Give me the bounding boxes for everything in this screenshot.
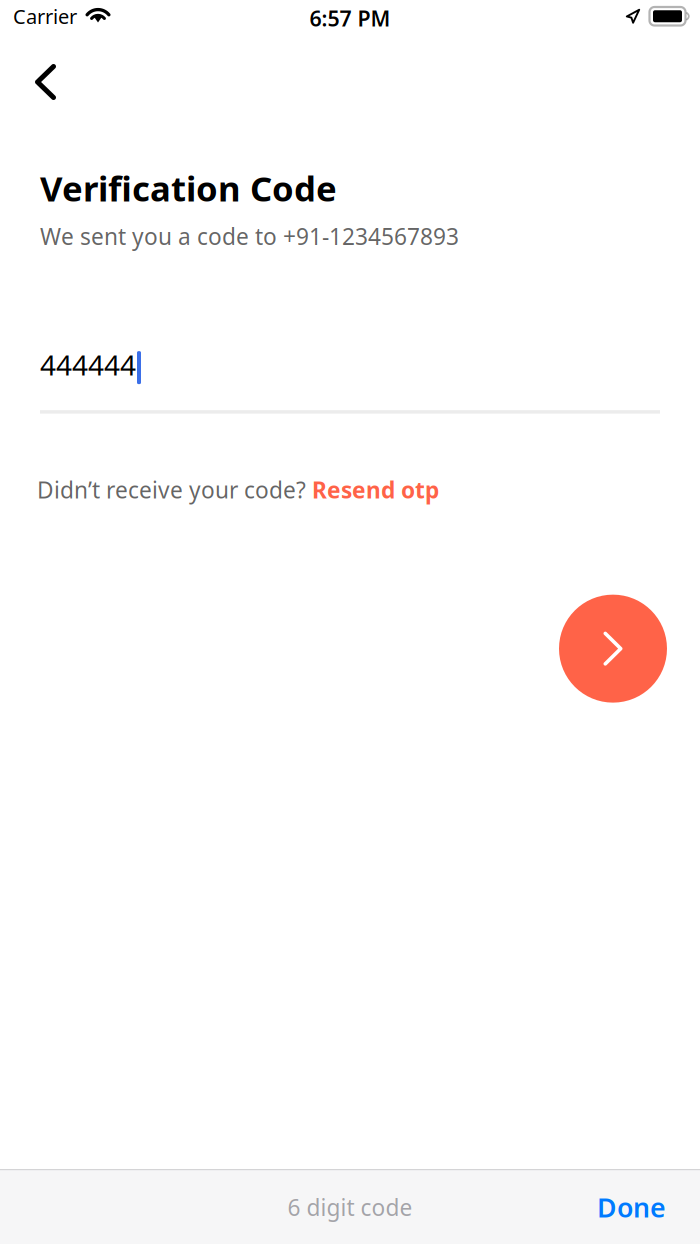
button[interactable]: Done [585, 1181, 678, 1233]
staticText: Verification Code [40, 165, 337, 211]
button[interactable]: 6 digit code [0, 346, 660, 414]
staticText: Done [597, 1189, 666, 1225]
staticText: 6:57 PM [309, 4, 390, 32]
staticText: Resend otp [312, 475, 439, 505]
button[interactable]: Resend otp [312, 468, 439, 512]
staticText: Didn’t receive your code? [37, 475, 306, 505]
button[interactable]: Continue [559, 595, 667, 703]
staticText: We sent you a code to +91-1234567893 [40, 221, 459, 251]
staticText: 444444 [40, 346, 136, 383]
button[interactable]: Back [0, 44, 86, 114]
staticText: Carrier [13, 3, 77, 30]
staticText: 6 digit code [287, 1192, 412, 1222]
